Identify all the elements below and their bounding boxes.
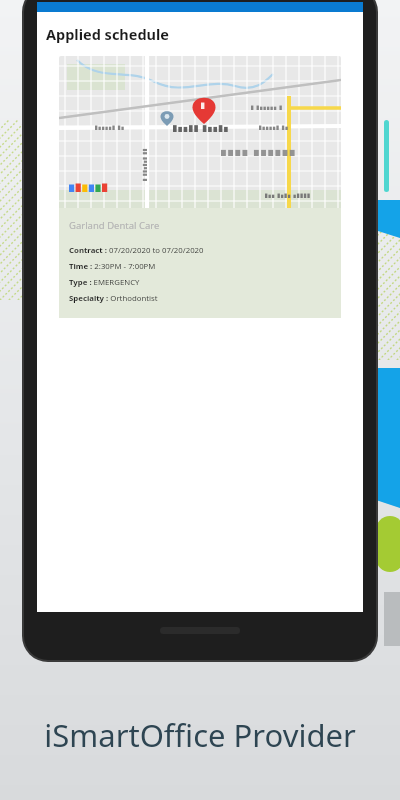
staticText: Contract : 07/20/2020 to 07/20/2020 [69,245,204,256]
staticText: Time : 2:30PM - 7:00PM [69,261,156,272]
staticText: Garland Dental Care [69,219,160,232]
staticText: Type : EMERGENCY [69,277,140,288]
staticText: Specialty : Orthodontist [69,293,158,304]
button[interactable]: Map location [59,56,341,208]
staticText: iSmartOffice Provider [44,714,356,756]
staticText: Applied schedule [46,24,170,44]
button[interactable]: Map location [59,56,341,354]
